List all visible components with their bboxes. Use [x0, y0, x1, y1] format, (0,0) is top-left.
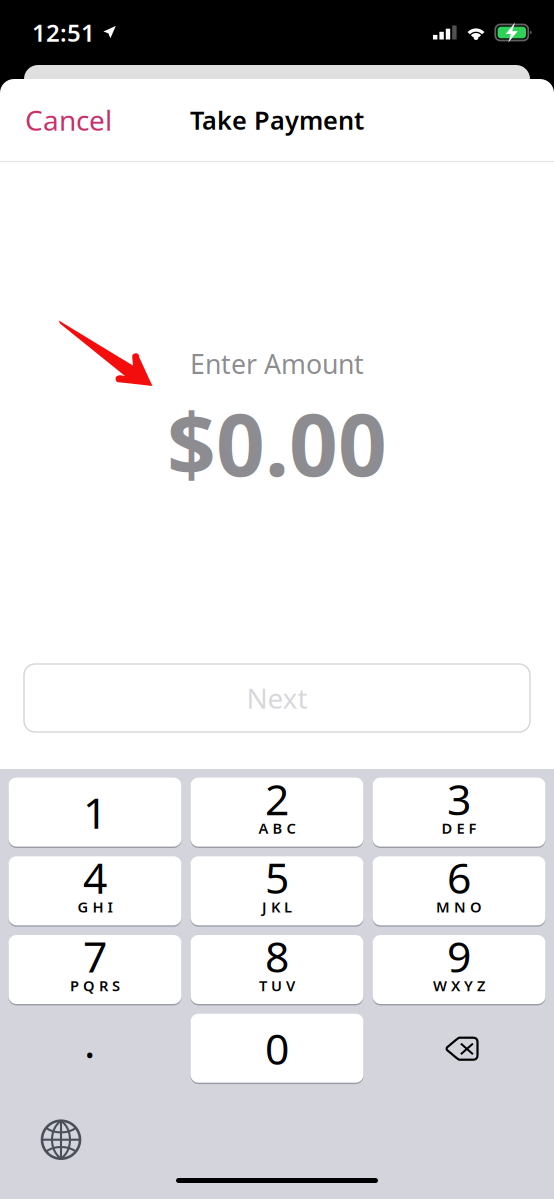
button[interactable]: 8: [190, 935, 363, 1004]
button[interactable]: 2: [190, 778, 363, 847]
staticText: 0: [265, 1020, 289, 1077]
button[interactable]: Delete: [372, 1014, 545, 1083]
staticText: J K L: [262, 897, 292, 917]
staticText: Cancel: [25, 101, 112, 139]
staticText: 2: [265, 770, 289, 827]
staticText: 8: [265, 928, 289, 984]
staticText: P Q R S: [70, 976, 120, 995]
button[interactable]: .: [8, 1014, 181, 1083]
staticText: .: [84, 1013, 95, 1070]
button[interactable]: Next: [0, 664, 554, 732]
staticText: M N O: [436, 897, 482, 917]
button[interactable]: 3: [372, 778, 545, 847]
staticText: D E F: [441, 818, 476, 838]
staticText: T U V: [259, 976, 295, 995]
staticText: $0.00: [167, 386, 387, 500]
button[interactable]: 5: [190, 856, 363, 925]
staticText: 3: [447, 770, 471, 827]
staticText: W X Y Z: [433, 976, 485, 995]
staticText: 5: [265, 849, 289, 906]
staticText: Take Payment: [190, 103, 364, 137]
button[interactable]: 4: [8, 856, 181, 925]
staticText: 4: [83, 849, 107, 906]
button[interactable]: Next keyboard: [0, 1113, 104, 1167]
button[interactable]: Cancel: [0, 89, 128, 151]
staticText: 9: [447, 928, 471, 984]
button[interactable]: 0: [190, 1014, 363, 1083]
button[interactable]: 7: [8, 935, 181, 1004]
staticText: A B C: [258, 818, 295, 838]
button[interactable]: 1: [8, 778, 181, 847]
button[interactable]: 6: [372, 856, 545, 925]
button[interactable]: 9: [372, 935, 545, 1004]
staticText: Next: [246, 679, 307, 717]
staticText: 1: [83, 784, 107, 840]
staticText: Enter Amount: [190, 346, 364, 381]
staticText: G H I: [77, 897, 112, 917]
staticText: 7: [83, 928, 107, 984]
staticText: 12:51: [32, 17, 95, 48]
staticText: 6: [447, 849, 471, 906]
